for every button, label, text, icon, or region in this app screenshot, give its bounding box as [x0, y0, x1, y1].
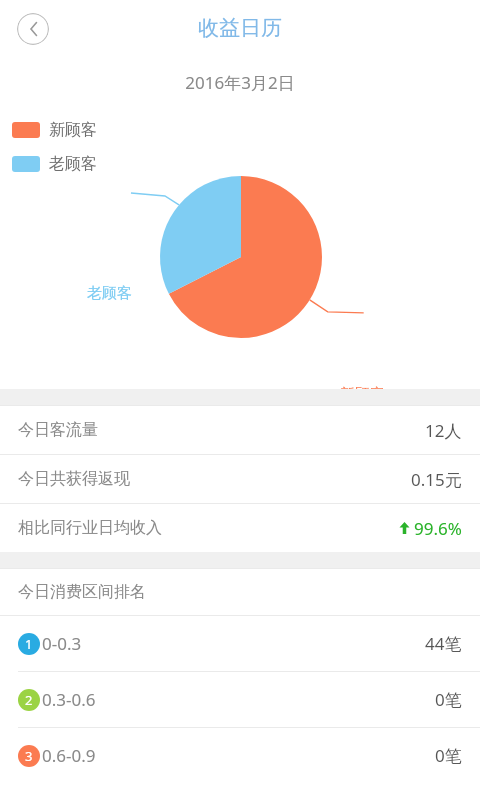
staticText: 44笔 — [425, 632, 462, 655]
staticText: 0笔 — [435, 744, 462, 767]
staticText: 新顾客 — [49, 120, 97, 140]
staticText: 今日客流量 — [18, 420, 98, 440]
button[interactable]: 今日共获得返现 — [0, 455, 480, 503]
staticText: 1 — [25, 635, 33, 653]
button[interactable]: 相比同行业日均收入 — [0, 504, 480, 552]
button[interactable]: 今日客流量 — [0, 406, 480, 454]
staticText: 老顾客 — [49, 154, 97, 174]
staticText: 老顾客 — [87, 284, 132, 303]
staticText: 0-0.3 — [42, 632, 82, 655]
staticText: 0.15元 — [411, 468, 462, 491]
staticText: 99.6% — [414, 517, 462, 540]
staticText: 0笔 — [435, 688, 462, 711]
button[interactable]: Back — [17, 13, 49, 45]
button[interactable]: 1 — [0, 616, 480, 671]
staticText: 新顾客 — [340, 385, 385, 404]
staticText: 相比同行业日均收入 — [18, 518, 162, 538]
staticText: 12人 — [425, 419, 462, 442]
staticText: 收益日历 — [0, 15, 480, 41]
staticText: 2016年3月2日 — [0, 71, 480, 94]
staticText: 今日消费区间排名 — [18, 582, 146, 602]
button[interactable]: 2 — [0, 672, 480, 727]
staticText: 0.3-0.6 — [42, 688, 96, 711]
staticText: 0.6-0.9 — [42, 744, 96, 767]
staticText: 今日共获得返现 — [18, 469, 130, 489]
staticText: 3 — [25, 747, 33, 765]
button[interactable]: 3 — [0, 728, 480, 783]
staticText: 2 — [25, 691, 33, 709]
